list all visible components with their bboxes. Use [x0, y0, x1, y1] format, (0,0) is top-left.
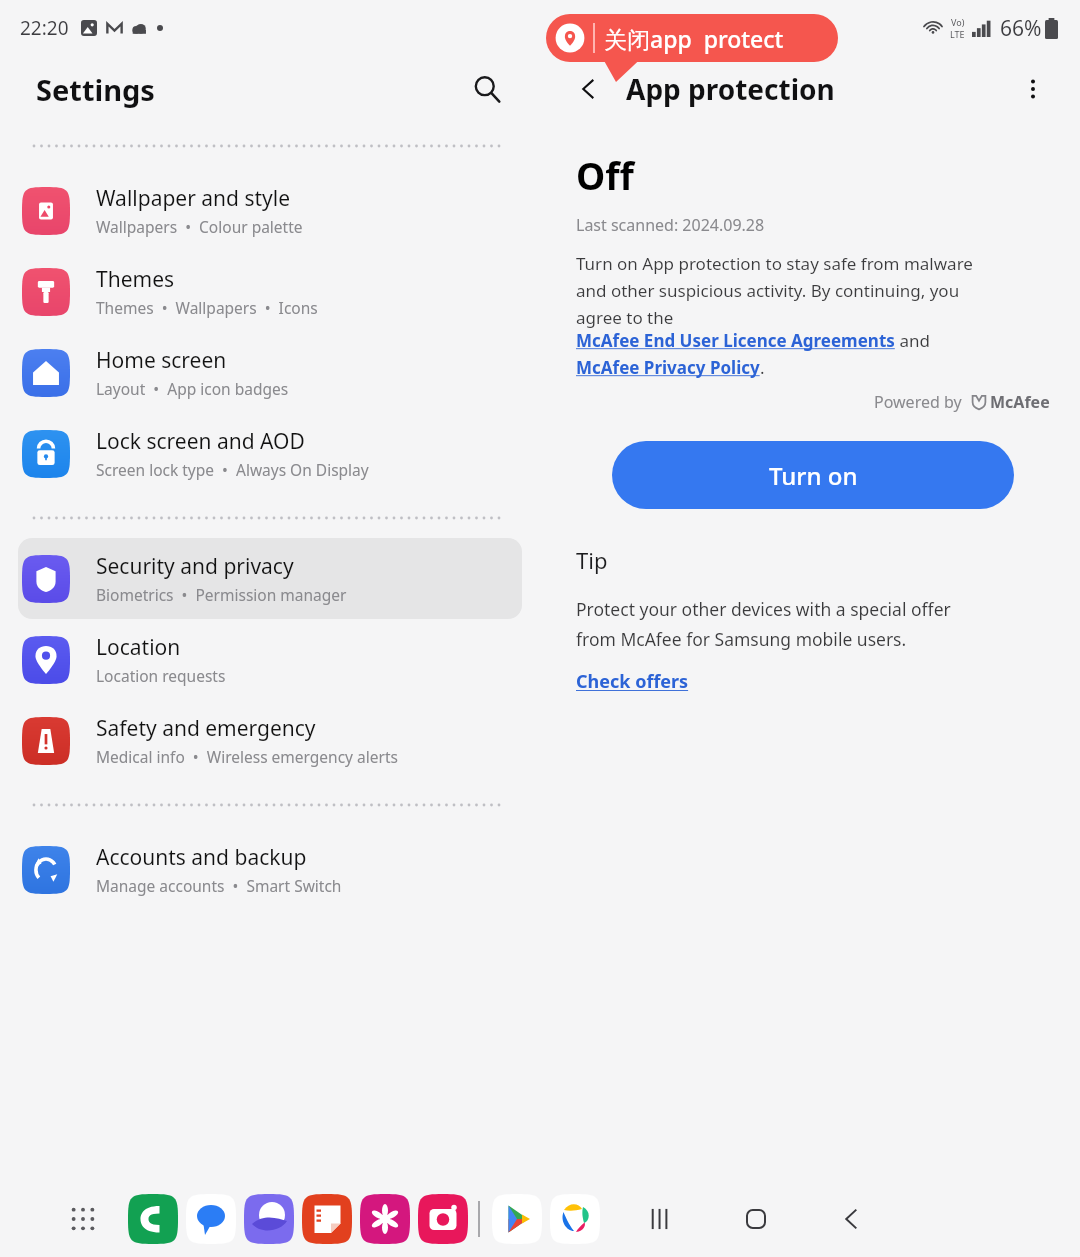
staticText: and: [895, 329, 930, 352]
button[interactable]: Recents: [634, 1193, 686, 1245]
staticText: Off: [576, 150, 634, 200]
staticText: Accounts and backup: [96, 843, 307, 872]
staticText: McAfee End User Licence Agreements: [576, 329, 895, 352]
staticText: Wallpapers • Colour palette: [96, 216, 303, 237]
staticText: Last scanned: 2024.09.28: [576, 214, 765, 236]
staticText: Powered by: [874, 391, 962, 413]
staticText: 关闭app protect: [604, 23, 784, 54]
staticText: 22:20: [20, 15, 69, 41]
staticText: Biometrics • Permission manager: [96, 584, 347, 605]
button[interactable]: McAfee Privacy Policy: [576, 356, 760, 379]
button[interactable]: Phone: [124, 1190, 182, 1248]
staticText: 66%: [1000, 14, 1042, 43]
staticText: App protection: [626, 70, 835, 108]
button[interactable]: Home screen: [18, 332, 522, 413]
button[interactable]: More options: [1010, 66, 1056, 112]
staticText: Location requests: [96, 665, 226, 686]
button[interactable]: Play Store: [488, 1190, 546, 1248]
staticText: Settings: [36, 70, 155, 109]
button[interactable]: 关闭app protect: [546, 14, 838, 62]
staticText: Tip: [576, 545, 608, 575]
button[interactable]: Turn on: [612, 441, 1014, 509]
staticText: Security and privacy: [96, 552, 294, 581]
staticText: Safety and emergency: [96, 714, 316, 743]
staticText: Wallpaper and style: [96, 184, 291, 213]
button[interactable]: Galaxy Store: [546, 1190, 604, 1248]
staticText: Layout • App icon badges: [96, 378, 289, 399]
button[interactable]: Home: [730, 1193, 782, 1245]
button[interactable]: Back: [826, 1193, 878, 1245]
button[interactable]: Messages: [182, 1190, 240, 1248]
button[interactable]: Back: [566, 66, 612, 112]
staticText: Turn on: [769, 459, 858, 492]
button[interactable]: Security and privacy: [18, 538, 522, 619]
staticText: Lock screen and AOD: [96, 427, 305, 456]
button[interactable]: Location: [18, 619, 522, 700]
staticText: Home screen: [96, 346, 227, 375]
staticText: Location: [96, 633, 181, 662]
staticText: Protect your other devices with a specia…: [576, 597, 951, 651]
staticText: LTE: [950, 28, 965, 40]
staticText: Themes: [96, 265, 175, 294]
button[interactable]: Themes: [18, 251, 522, 332]
button[interactable]: Safety and emergency: [18, 700, 522, 781]
staticText: Vo): [951, 16, 965, 28]
staticText: .: [760, 356, 765, 379]
button[interactable]: Apps: [58, 1194, 108, 1244]
staticText: Manage accounts • Smart Switch: [96, 875, 342, 896]
button[interactable]: Accounts and backup: [18, 829, 522, 910]
button[interactable]: Camera: [414, 1190, 472, 1248]
button[interactable]: Search: [464, 66, 510, 112]
button[interactable]: Internet: [240, 1190, 298, 1248]
staticText: McAfee: [990, 391, 1050, 413]
staticText: Screen lock type • Always On Display: [96, 459, 369, 480]
button[interactable]: McAfee End User Licence Agreements: [576, 329, 895, 352]
staticText: Turn on App protection to stay safe from…: [576, 252, 973, 329]
button[interactable]: Check offers: [576, 669, 689, 694]
button[interactable]: Gallery: [356, 1190, 414, 1248]
button[interactable]: Samsung Notes: [298, 1190, 356, 1248]
button[interactable]: Wallpaper and style: [18, 170, 522, 251]
staticText: Check offers: [576, 669, 689, 694]
staticText: Medical info • Wireless emergency alerts: [96, 746, 398, 767]
button[interactable]: Lock screen and AOD: [18, 413, 522, 494]
staticText: McAfee Privacy Policy: [576, 356, 760, 379]
staticText: Themes • Wallpapers • Icons: [96, 297, 318, 318]
